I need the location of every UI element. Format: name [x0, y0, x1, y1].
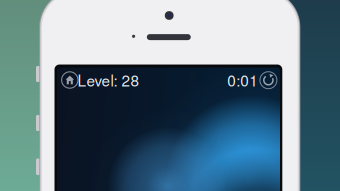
staticText: 0:01 — [227, 69, 258, 91]
button[interactable]: Restart level — [259, 71, 277, 89]
staticText: Level: 28 — [78, 69, 140, 91]
button[interactable]: Home — [61, 71, 79, 89]
